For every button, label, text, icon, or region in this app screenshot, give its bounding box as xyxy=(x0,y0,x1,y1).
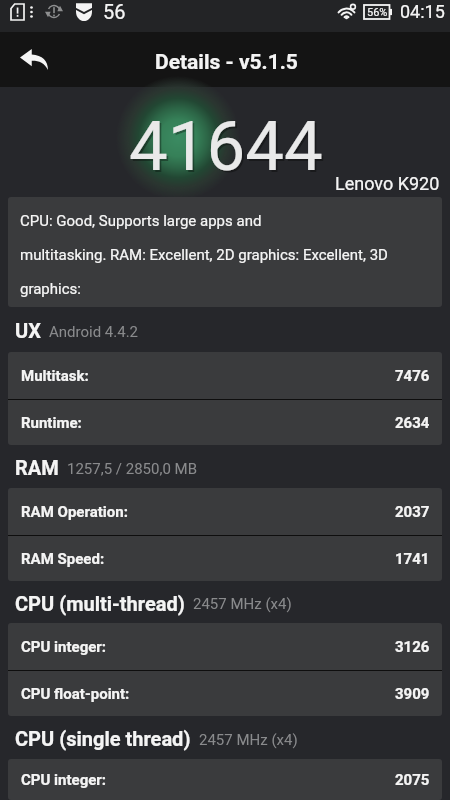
staticText: CPU float-point: xyxy=(21,685,130,703)
button[interactable]: CPU float-point: xyxy=(8,671,442,716)
staticText: Multitask: xyxy=(21,367,89,385)
staticText: CPU (single thread) xyxy=(15,727,191,750)
staticText: 56% xyxy=(367,6,388,19)
staticText: RAM Speed: xyxy=(21,550,105,568)
staticText: 2634 xyxy=(395,414,430,432)
staticText: 1741 xyxy=(395,550,430,568)
button[interactable]: Back xyxy=(7,36,61,84)
staticText: RAM Operation: xyxy=(21,503,128,521)
staticText: 3909 xyxy=(395,685,430,703)
button[interactable]: CPU integer: xyxy=(8,759,442,800)
staticText: 7476 xyxy=(395,367,430,385)
button[interactable]: Multitask: xyxy=(8,352,442,399)
staticText: CPU (multi-thread) xyxy=(15,592,185,615)
button[interactable]: Runtime: xyxy=(8,400,442,445)
staticText: Android 4.4.2 xyxy=(49,323,139,341)
staticText: 2457 MHz (x4) xyxy=(193,595,292,613)
staticText: 56 xyxy=(103,0,126,23)
staticText: Runtime: xyxy=(21,414,82,432)
staticText: 2457 MHz (x4) xyxy=(199,731,298,749)
staticText: 04:15 xyxy=(400,1,445,22)
staticText: 3126 xyxy=(395,638,430,656)
staticText: CPU integer: xyxy=(21,771,107,789)
staticText: 2075 xyxy=(395,771,430,789)
button[interactable]: CPU integer: xyxy=(8,623,442,670)
button[interactable]: RAM Operation: xyxy=(8,488,442,535)
staticText: 41644 xyxy=(131,108,325,189)
staticText: Lenovo K920 xyxy=(335,173,440,194)
staticText: 1257,5 / 2850,0 MB xyxy=(67,460,197,478)
staticText: CPU: Good, Supports large apps and multi… xyxy=(20,212,388,298)
staticText: RAM xyxy=(15,456,59,479)
staticText: 41644 xyxy=(129,106,323,187)
staticText: Details - v5.1.5 xyxy=(155,50,298,75)
staticText: 2037 xyxy=(395,503,430,521)
staticText: CPU integer: xyxy=(21,638,107,656)
staticText: UX xyxy=(15,319,41,342)
button[interactable]: RAM Speed: xyxy=(8,536,442,581)
